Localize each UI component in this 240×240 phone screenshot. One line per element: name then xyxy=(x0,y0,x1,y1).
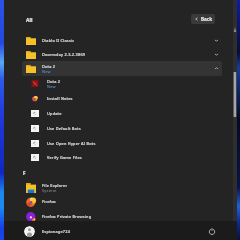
staticText: Firefox Private Browsing xyxy=(42,214,92,219)
button[interactable]: Firefox Private Browsing xyxy=(22,209,222,224)
button[interactable]: Use Default Bots xyxy=(26,121,221,136)
staticText: Firefox xyxy=(42,199,56,204)
button[interactable]: Doomsday 2.3.2.3869 xyxy=(22,47,222,62)
button[interactable]: Use Open Hyper AI Bots xyxy=(26,136,221,151)
button[interactable]: Espionage724 xyxy=(4,221,199,240)
staticText: Dota 2 xyxy=(47,79,61,84)
staticText: Install Notes xyxy=(47,96,73,101)
button[interactable]: Verify Game Files xyxy=(26,150,221,165)
button[interactable]: Dota 2 xyxy=(22,61,222,76)
staticText: Verify Game Files xyxy=(47,155,82,160)
staticText: New xyxy=(42,69,51,74)
button[interactable]: Power xyxy=(199,221,225,240)
staticText: Diablo II Classic xyxy=(42,38,75,43)
staticText: Use Default Bots xyxy=(47,126,81,131)
staticText: Espionage724 xyxy=(42,229,71,234)
staticText: Dota 2 xyxy=(42,64,56,69)
button[interactable]: Update xyxy=(26,106,221,121)
button[interactable]: File Explorer xyxy=(22,180,222,195)
button[interactable]: F xyxy=(18,166,26,179)
staticText: System xyxy=(42,188,57,193)
staticText: Back xyxy=(201,16,213,22)
staticText: Doomsday 2.3.2.3869 xyxy=(42,52,86,57)
staticText: F xyxy=(23,170,26,176)
button[interactable]: Back xyxy=(191,14,215,24)
staticText: Use Open Hyper AI Bots xyxy=(47,141,96,146)
button[interactable]: Install Notes xyxy=(26,91,221,106)
button[interactable]: All xyxy=(26,17,33,24)
button[interactable]: Firefox xyxy=(22,194,222,209)
staticText: File Explorer xyxy=(42,183,68,188)
staticText: New xyxy=(47,84,56,89)
button[interactable]: Dota 2 xyxy=(26,76,221,91)
staticText: Update xyxy=(47,111,62,116)
button[interactable]: Diablo II Classic xyxy=(22,33,222,48)
